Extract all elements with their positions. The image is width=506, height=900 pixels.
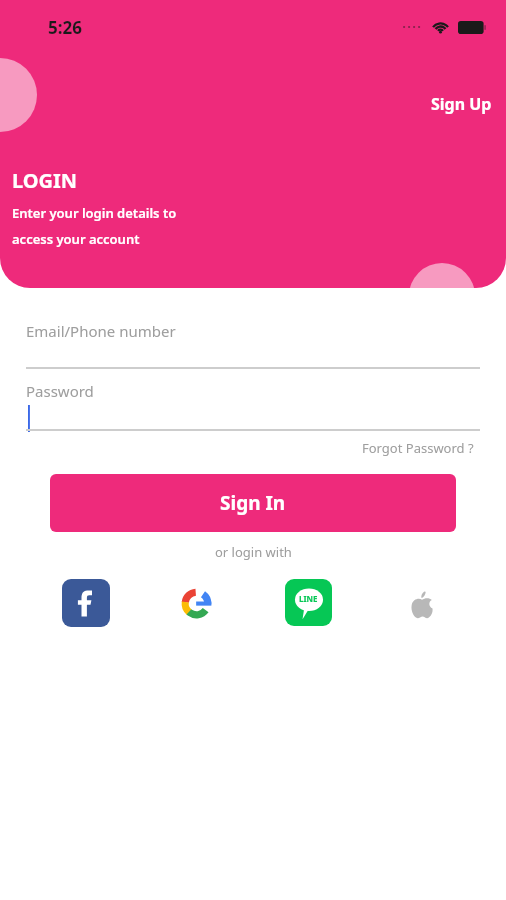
staticText: LOGIN	[12, 167, 78, 194]
staticText: Enter your login details to	[12, 204, 177, 222]
staticText: Sign In	[220, 490, 286, 516]
button[interactable]: Sign in with LINE	[285, 579, 332, 626]
staticText: Email/Phone number	[26, 321, 176, 341]
staticText: Forgot Password ?	[362, 439, 474, 457]
staticText: access your account	[12, 230, 140, 248]
button[interactable]: Password	[26, 381, 480, 429]
button[interactable]: Sign in with Facebook	[62, 579, 110, 627]
staticText: 5:26	[48, 16, 82, 39]
staticText: Sign Up	[431, 93, 492, 115]
button[interactable]: Sign in with Google	[171, 578, 221, 628]
staticText: Password	[26, 381, 94, 401]
button[interactable]: Forgot Password ?	[359, 437, 477, 459]
button[interactable]: Email/Phone number	[26, 321, 480, 367]
button[interactable]: Sign Up	[427, 90, 496, 118]
staticText: or login with	[215, 543, 292, 561]
staticText: LINE	[299, 593, 318, 604]
button[interactable]: Sign in with Apple	[398, 581, 445, 628]
button[interactable]: Sign In	[50, 474, 456, 532]
